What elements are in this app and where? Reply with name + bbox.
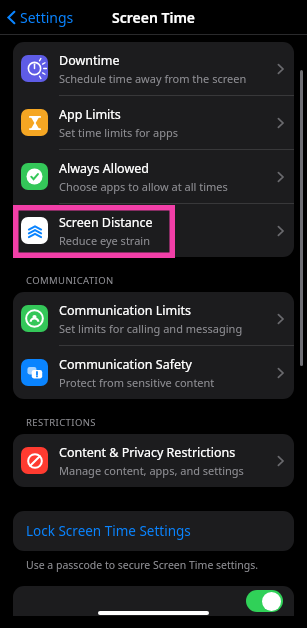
staticText: RESTRICTIONS [26, 416, 96, 429]
staticText: App Limits [59, 106, 121, 123]
staticText: Screen Distance [59, 214, 153, 231]
button[interactable]: Settings [0, 4, 82, 31]
button[interactable]: Screen Distance [13, 204, 294, 257]
staticText: Settings [20, 8, 74, 27]
staticText: Lock Screen Time Settings [26, 522, 191, 540]
staticText: Reduce eye strain [59, 233, 150, 248]
staticText: Always Allowed [59, 160, 149, 177]
button[interactable]: Always Allowed [13, 150, 294, 204]
staticText: Choose apps to allow at all times [59, 179, 228, 194]
staticText: Content & Privacy Restrictions [59, 444, 236, 461]
staticText: Downtime [59, 52, 120, 69]
staticText: Protect from sensitive content [59, 375, 215, 390]
staticText: Set time limits for apps [59, 125, 178, 140]
button[interactable]: App Limits [13, 96, 294, 150]
button[interactable]: Communication Safety [13, 346, 294, 399]
staticText: Schedule time away from the screen [59, 71, 247, 86]
staticText: Screen Time [112, 8, 196, 27]
staticText: Use a passcode to secure Screen Time set… [26, 558, 259, 572]
staticText: Communication Limits [59, 302, 191, 319]
button[interactable]: Toggle [246, 590, 283, 612]
staticText: Manage content, apps, and settings [59, 463, 244, 478]
staticText: Communication Safety [59, 356, 192, 373]
staticText: COMMUNICATION [26, 274, 114, 287]
button[interactable]: Lock Screen Time Settings [13, 511, 294, 551]
button[interactable]: Content & Privacy Restrictions [13, 434, 294, 487]
staticText: Set limits for calling and messaging [59, 321, 243, 336]
button[interactable]: Communication Limits [13, 292, 294, 346]
button[interactable]: Downtime [13, 42, 294, 96]
